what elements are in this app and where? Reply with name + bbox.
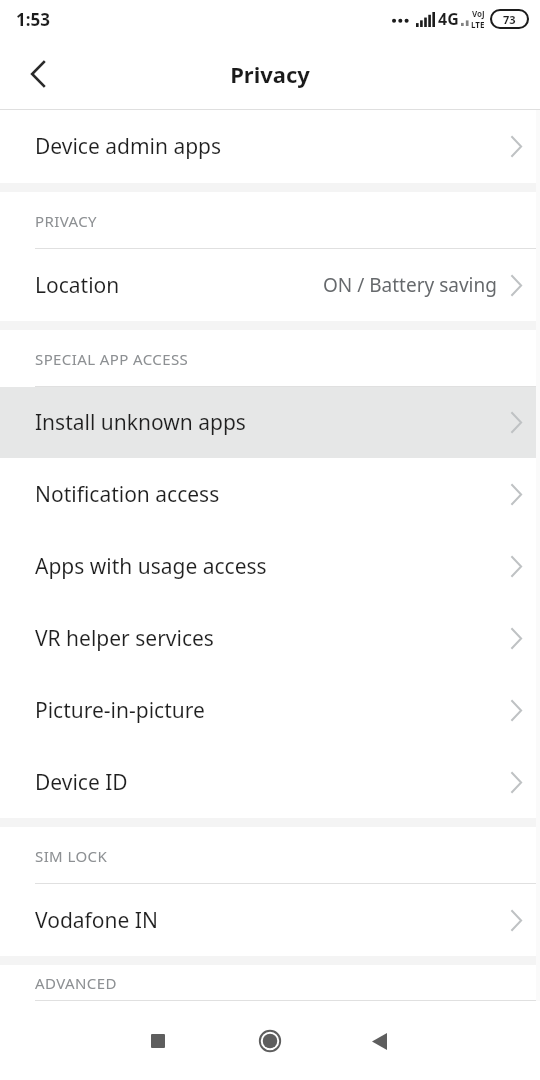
staticText: Privacy — [230, 59, 310, 89]
button[interactable]: Back — [351, 1013, 407, 1069]
staticText: LTE — [471, 19, 485, 30]
button[interactable]: Install unknown apps — [0, 387, 540, 458]
staticText: Apps with usage access — [35, 552, 267, 581]
staticText: ON / Battery saving — [323, 272, 497, 298]
staticText: Vodafone IN — [35, 906, 158, 935]
button[interactable]: Notification access — [0, 458, 540, 530]
button[interactable]: Device ID — [0, 746, 540, 818]
staticText: Device ID — [35, 768, 128, 797]
staticText: 73 — [503, 12, 516, 27]
staticText: VoJ — [472, 8, 485, 19]
button[interactable]: Recent apps — [130, 1013, 186, 1069]
staticText: Device admin apps — [35, 132, 222, 161]
button[interactable]: Picture-in-picture — [0, 674, 540, 746]
button[interactable]: Home — [242, 1013, 298, 1069]
staticText: Picture-in-picture — [35, 696, 205, 725]
staticText: VR helper services — [35, 624, 214, 653]
button[interactable]: Vodafone IN — [0, 884, 540, 956]
staticText: 4G — [438, 8, 459, 30]
staticText: 1:53 — [16, 8, 50, 31]
button[interactable]: Apps with usage access — [0, 530, 540, 602]
staticText: PRIVACY — [35, 211, 97, 231]
staticText: Location — [35, 271, 120, 300]
staticText: SIM LOCK — [35, 846, 108, 866]
staticText: Notification access — [35, 480, 220, 509]
button[interactable]: Location — [0, 249, 540, 321]
button[interactable]: VR helper services — [0, 602, 540, 674]
staticText: ADVANCED — [35, 973, 117, 993]
button[interactable]: Back — [14, 50, 62, 98]
button[interactable]: Device admin apps — [0, 110, 540, 183]
staticText: SPECIAL APP ACCESS — [35, 349, 189, 369]
staticText: Install unknown apps — [35, 408, 246, 437]
